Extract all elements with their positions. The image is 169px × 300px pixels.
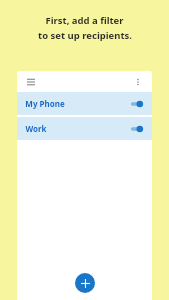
staticText: My Phone — [25, 98, 65, 109]
staticText: Work — [25, 123, 47, 134]
button[interactable]: Open navigation menu — [24, 75, 38, 89]
button[interactable]: My Phone — [17, 92, 152, 115]
staticText: First, add a filter — [45, 14, 124, 27]
button[interactable]: Toggle filter — [130, 99, 144, 109]
button[interactable]: More options — [131, 75, 145, 89]
button[interactable]: Toggle filter — [130, 124, 144, 134]
button[interactable]: Work — [17, 117, 152, 140]
button[interactable]: Add filter — [75, 273, 95, 293]
staticText: to set up recipients. — [38, 29, 132, 42]
